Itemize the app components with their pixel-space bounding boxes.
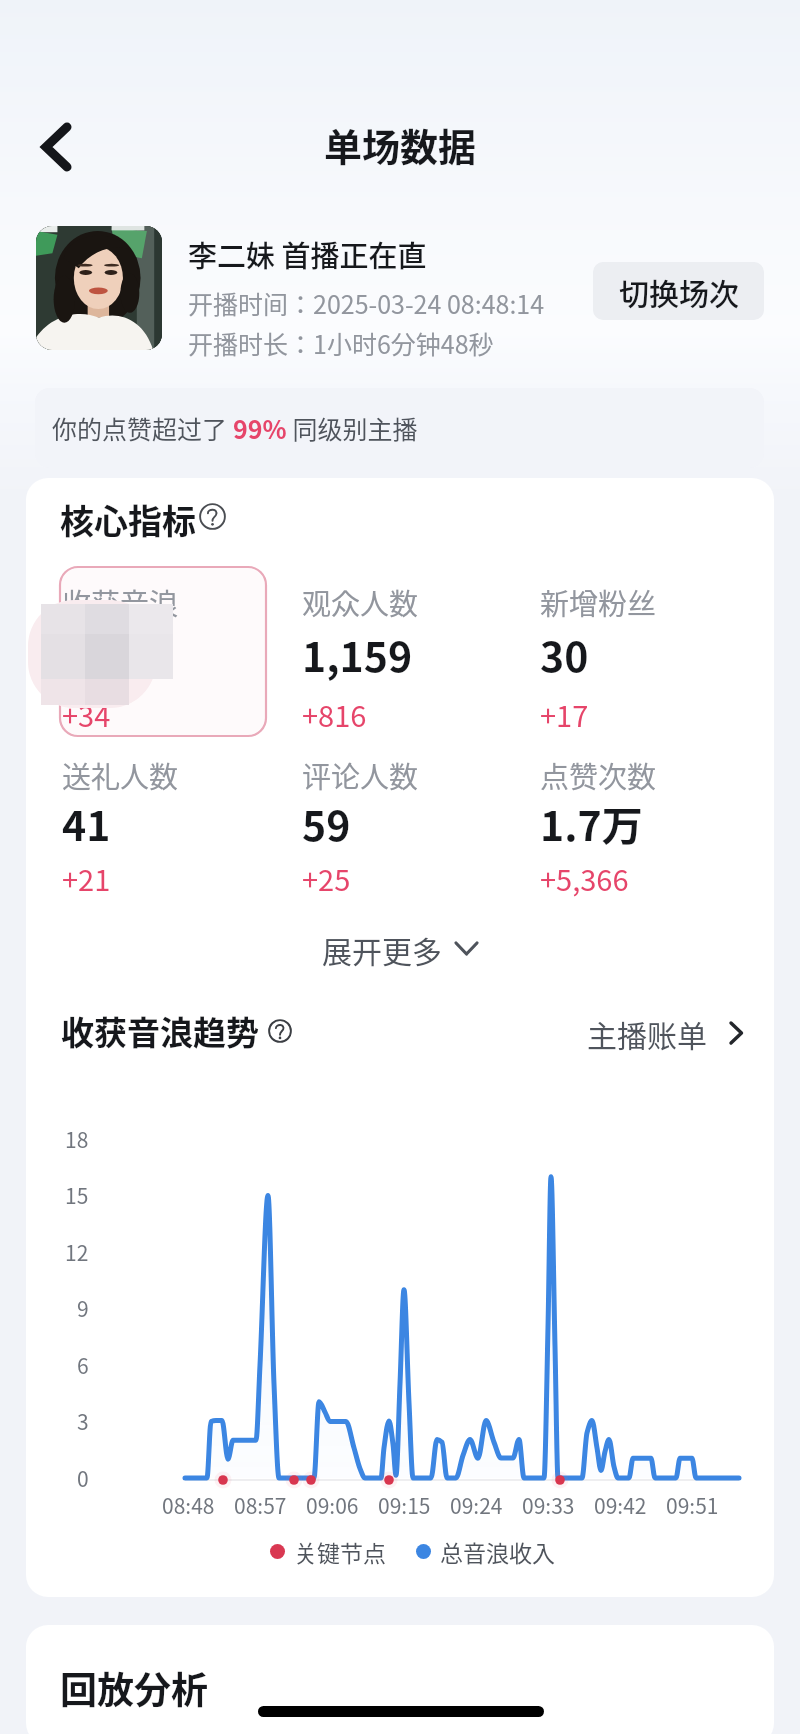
staticText: 15 xyxy=(65,1180,89,1210)
staticText: 59 xyxy=(302,793,351,852)
staticText: 单场数据 xyxy=(324,117,477,172)
staticText: 09:42 xyxy=(594,1490,647,1518)
staticText: +25 xyxy=(302,857,351,899)
staticText: 核心指标 xyxy=(60,495,196,544)
staticText: 切换场次 xyxy=(619,270,739,313)
staticText: 30 xyxy=(540,624,589,683)
staticText: 08:48 xyxy=(162,1490,215,1518)
staticText: +34 xyxy=(62,693,111,735)
staticText: 09:51 xyxy=(666,1490,719,1518)
staticText: 点赞次数 xyxy=(540,754,657,796)
staticText: 41 xyxy=(62,793,111,852)
staticText: 同级别主播 xyxy=(287,410,418,446)
staticText: 1,159 xyxy=(302,624,413,683)
staticText: 收获音浪 xyxy=(62,581,179,623)
staticText: 李二妹 首播正在直 xyxy=(188,233,427,275)
staticText: 6 xyxy=(77,1350,89,1380)
staticText: 回放分析 xyxy=(60,1661,208,1715)
staticText: 收获音浪趋势 xyxy=(61,1007,259,1055)
staticText: 关键节点 xyxy=(294,1535,386,1568)
staticText: 09:24 xyxy=(450,1490,503,1518)
staticText: 09:06 xyxy=(306,1490,359,1518)
staticText: +21 xyxy=(62,857,111,899)
button[interactable]: Back xyxy=(22,115,88,179)
staticText: 开播时长：1小时6分钟48秒 xyxy=(188,325,494,361)
staticText: 09:33 xyxy=(522,1490,575,1518)
staticText: +5,366 xyxy=(540,857,629,899)
staticText: 新增粉丝 xyxy=(540,581,657,623)
staticText: 18 xyxy=(65,1124,89,1154)
staticText: 送礼人数 xyxy=(62,754,179,796)
staticText: 0 xyxy=(77,1463,89,1493)
button[interactable]: 切换场次 xyxy=(593,262,764,320)
button[interactable]: 主播账单 xyxy=(587,1006,773,1060)
button[interactable]: Host avatar xyxy=(36,226,162,350)
staticText: 展开更多 xyxy=(322,928,442,971)
staticText: 开播时间：2025-03-24 08:48:14 xyxy=(188,285,545,321)
staticText: 评论人数 xyxy=(302,754,419,796)
button[interactable]: 展开更多 xyxy=(322,920,518,978)
staticText: 99% xyxy=(233,410,287,446)
staticText: 08:57 xyxy=(234,1490,287,1518)
staticText: 9 xyxy=(77,1293,89,1323)
staticText: 主播账单 xyxy=(587,1012,707,1055)
staticText: 观众人数 xyxy=(302,581,419,623)
staticText: 总音浪收入 xyxy=(440,1535,555,1568)
staticText: 09:15 xyxy=(378,1490,431,1518)
staticText: 3 xyxy=(77,1406,89,1436)
staticText: +17 xyxy=(540,693,589,735)
staticText: 12 xyxy=(65,1237,89,1267)
staticText: 1.7万 xyxy=(540,793,643,852)
staticText: +816 xyxy=(302,693,367,735)
staticText: 你的点赞超过了 xyxy=(52,410,233,446)
